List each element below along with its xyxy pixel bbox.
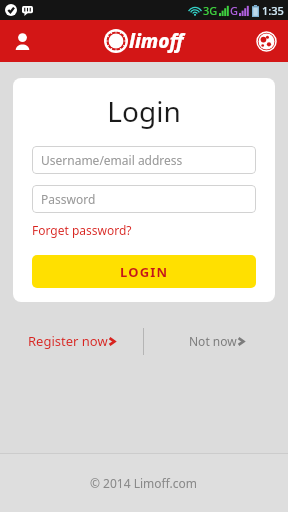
button[interactable]: Not now bbox=[183, 327, 250, 355]
staticText: Register now bbox=[28, 332, 108, 350]
staticText: 3G bbox=[203, 3, 218, 18]
button[interactable]: Username/email address bbox=[32, 146, 256, 174]
button[interactable]: Language bbox=[244, 20, 288, 62]
staticText: LOGIN bbox=[120, 263, 169, 281]
staticText: Not now bbox=[189, 333, 237, 349]
staticText: Username/email address bbox=[41, 152, 183, 168]
button[interactable]: Forget password? bbox=[32, 222, 132, 238]
staticText: © 2014 Limoff.com bbox=[90, 475, 198, 491]
staticText: Password bbox=[41, 191, 96, 207]
staticText: Login bbox=[32, 92, 256, 130]
button[interactable]: Password bbox=[32, 185, 256, 213]
staticText: limoff bbox=[129, 28, 184, 54]
button[interactable]: Register now bbox=[22, 326, 121, 356]
staticText: 1:35 bbox=[262, 3, 284, 18]
staticText: Forget password? bbox=[32, 222, 132, 238]
button[interactable]: Profile bbox=[0, 20, 44, 62]
staticText: G bbox=[230, 3, 238, 18]
button[interactable]: LOGIN bbox=[32, 255, 256, 288]
